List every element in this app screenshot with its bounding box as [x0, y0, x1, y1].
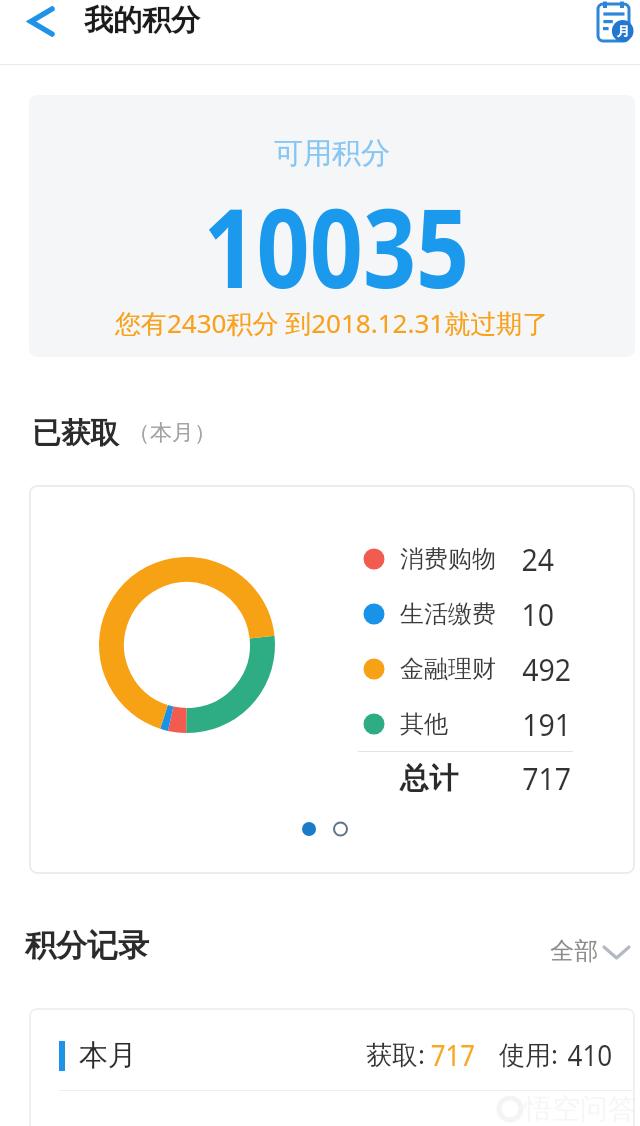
staticText: （本月） — [128, 419, 216, 447]
staticText: 410 — [567, 1035, 612, 1074]
button[interactable] — [594, 0, 636, 46]
staticText: 我的积分 — [84, 2, 200, 39]
staticText: 492 — [522, 648, 572, 690]
staticText: 积分记录 — [25, 926, 149, 965]
staticText: 已获取 — [32, 415, 119, 452]
staticText: 717 — [522, 757, 572, 799]
staticText: 本月 — [79, 1037, 137, 1074]
staticText: 24 — [521, 538, 554, 580]
staticText: 其他 — [400, 709, 448, 739]
button[interactable] — [20, 0, 68, 46]
staticText: 月 — [617, 23, 630, 39]
staticText: 悟空问答 — [524, 1091, 636, 1126]
staticText: 717 — [431, 1035, 475, 1074]
staticText: 您有2430积分 到2018.12.31就过期了 — [115, 305, 549, 341]
staticText: 全部 — [550, 936, 598, 966]
button[interactable] — [540, 928, 640, 968]
staticText: 总计 — [400, 760, 458, 797]
staticText: 生活缴费 — [400, 599, 496, 629]
staticText: 191 — [522, 703, 572, 745]
staticText: 可用积分 — [274, 135, 390, 172]
staticText: 获取: — [366, 1036, 425, 1072]
button[interactable] — [29, 1008, 635, 1090]
staticText: 10 — [521, 593, 554, 635]
staticText: 10035 — [203, 170, 470, 320]
staticText: 消费购物 — [400, 544, 496, 574]
staticText: 使用: — [499, 1036, 558, 1072]
staticText: 金融理财 — [400, 654, 496, 684]
